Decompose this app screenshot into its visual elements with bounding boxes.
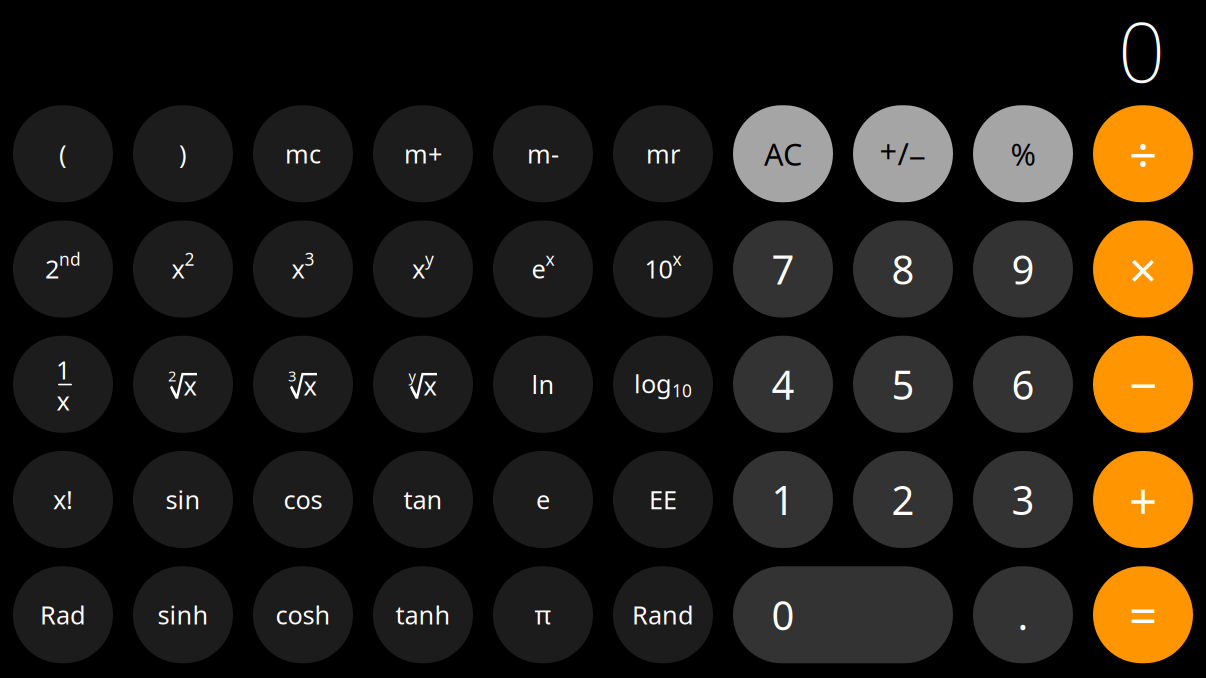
staticText: + xyxy=(1129,467,1157,532)
button[interactable]: x to the power of 3 xyxy=(253,220,353,317)
staticText: y xyxy=(408,366,415,385)
button[interactable]: e xyxy=(493,451,593,548)
button[interactable]: tanh xyxy=(373,566,473,663)
button[interactable]: Open parenthesis xyxy=(13,105,113,202)
staticText: % xyxy=(1010,133,1035,174)
button[interactable]: 2 to the power of nd xyxy=(13,220,113,317)
staticText: 4 xyxy=(771,358,794,411)
staticText: EE xyxy=(649,483,677,516)
staticText: x xyxy=(183,369,196,402)
staticText: 2nd xyxy=(45,247,81,285)
button[interactable]: Multiply xyxy=(1093,220,1193,317)
staticText: x! xyxy=(53,483,73,516)
button[interactable]: Equals xyxy=(1093,566,1193,663)
staticText: × xyxy=(1129,236,1157,302)
staticText: 8 xyxy=(891,242,914,295)
button[interactable]: y-th root of x xyxy=(373,336,473,433)
staticText: 10x xyxy=(644,247,681,285)
button[interactable]: m- xyxy=(493,105,593,202)
button[interactable]: Plus minus xyxy=(853,105,953,202)
button[interactable]: % xyxy=(973,105,1073,202)
staticText: x xyxy=(303,369,316,402)
staticText: sinh xyxy=(157,598,208,631)
staticText: 5 xyxy=(891,358,914,411)
button[interactable]: mr xyxy=(613,105,713,202)
button[interactable]: Add xyxy=(1093,451,1193,548)
staticText: 0 xyxy=(771,588,794,641)
button[interactable]: Rad xyxy=(13,566,113,663)
button[interactable]: mc xyxy=(253,105,353,202)
button[interactable]: 3 xyxy=(973,451,1073,548)
staticText: xy xyxy=(412,247,434,285)
button[interactable]: 2 xyxy=(853,451,953,548)
button[interactable]: sin xyxy=(133,451,233,548)
button[interactable]: Subtract xyxy=(1093,336,1193,433)
staticText: mr xyxy=(646,137,680,170)
staticText: ( xyxy=(59,137,67,170)
button[interactable]: ln xyxy=(493,336,593,433)
staticText: tanh xyxy=(395,598,450,631)
staticText: +/− xyxy=(879,130,926,178)
staticText: cos xyxy=(283,483,322,516)
staticText: ln xyxy=(531,367,554,401)
staticText: . xyxy=(1017,588,1028,641)
staticText: 1 xyxy=(771,473,794,526)
staticText: ) xyxy=(179,137,187,170)
button[interactable]: x factorial xyxy=(13,451,113,548)
staticText: AC xyxy=(764,133,802,174)
button[interactable]: m+ xyxy=(373,105,473,202)
button[interactable]: cosh xyxy=(253,566,353,663)
button[interactable]: Pi xyxy=(493,566,593,663)
staticText: mc xyxy=(285,137,321,170)
staticText: x xyxy=(56,384,69,417)
staticText: x3 xyxy=(291,247,314,285)
staticText: 9 xyxy=(1011,242,1034,295)
button[interactable]: log base 10 xyxy=(613,336,713,433)
staticText: e xyxy=(536,483,550,516)
staticText: − xyxy=(1129,351,1157,417)
button[interactable]: sinh xyxy=(133,566,233,663)
staticText: 7 xyxy=(771,242,794,295)
button[interactable]: x to the power of 2 xyxy=(133,220,233,317)
staticText: π xyxy=(534,598,551,631)
staticText: 3 xyxy=(1011,473,1034,526)
button[interactable]: Rand xyxy=(613,566,713,663)
button[interactable]: Decimal point xyxy=(973,566,1073,663)
button[interactable]: 10 to the power of x xyxy=(613,220,713,317)
staticText: Rad xyxy=(40,598,86,631)
button[interactable]: x to the power of y xyxy=(373,220,473,317)
button[interactable]: Close parenthesis xyxy=(133,105,233,202)
staticText: x2 xyxy=(171,247,194,285)
staticText: ÷ xyxy=(1129,121,1157,186)
button[interactable]: 7 xyxy=(733,220,833,317)
button[interactable]: 0 xyxy=(733,566,953,663)
staticText: ex xyxy=(531,247,554,285)
staticText: sin xyxy=(165,483,200,516)
button[interactable]: 5 xyxy=(853,336,953,433)
staticText: = xyxy=(1129,582,1157,647)
staticText: m- xyxy=(527,137,559,170)
button[interactable]: Cube root of x xyxy=(253,336,353,433)
staticText: 1 xyxy=(56,353,70,386)
button[interactable]: e to the power of x xyxy=(493,220,593,317)
button[interactable]: 8 xyxy=(853,220,953,317)
button[interactable]: One divided by x xyxy=(13,336,113,433)
button[interactable]: Divide xyxy=(1093,105,1193,202)
staticText: 6 xyxy=(1011,358,1034,411)
button[interactable]: cos xyxy=(253,451,353,548)
staticText: 2 xyxy=(891,473,914,526)
button[interactable]: 6 xyxy=(973,336,1073,433)
staticText: cosh xyxy=(275,598,330,631)
staticText: 2 xyxy=(168,366,176,385)
button[interactable]: 9 xyxy=(973,220,1073,317)
staticText: Rand xyxy=(632,598,694,631)
staticText: m+ xyxy=(404,137,442,170)
button[interactable]: Square root of x xyxy=(133,336,233,433)
button[interactable]: 1 xyxy=(733,451,833,548)
button[interactable]: 4 xyxy=(733,336,833,433)
button[interactable]: AC xyxy=(733,105,833,202)
staticText: 0 xyxy=(1118,0,1165,105)
button[interactable]: tan xyxy=(373,451,473,548)
staticText: log10 xyxy=(634,366,692,402)
button[interactable]: EE xyxy=(613,451,713,548)
